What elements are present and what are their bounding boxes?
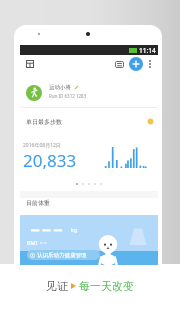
staticText: 运动小将 [49,84,71,91]
button[interactable]: Add [129,57,143,71]
staticText: 11:14 [139,46,156,55]
staticText: Run ID 6312 1283 [49,93,87,99]
button[interactable]: More options [145,57,155,71]
staticText: 认识乐动力健康管理 [37,252,87,259]
staticText: 目前体重 [26,199,50,207]
button[interactable]: Calendar [24,58,36,70]
staticText: kg [71,226,78,233]
staticText: 20,833 [23,149,77,172]
button[interactable]: Messages [113,58,126,71]
staticText: BMI [27,239,38,246]
button[interactable]: 认识乐动力健康管理 [27,250,100,260]
staticText: 单日最多步数 [26,118,62,126]
staticText: 每一天改变 [79,279,134,293]
staticText: 见证 [46,279,68,293]
staticText: 2016年08月12日 [23,142,61,149]
